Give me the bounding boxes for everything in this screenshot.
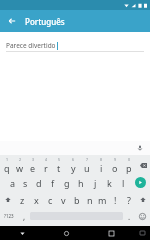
button[interactable]: Switch keyboard: [134, 226, 150, 240]
button[interactable]: Enter: [130, 174, 150, 191]
button[interactable]: h: [74, 174, 88, 191]
staticText: l: [122, 177, 125, 189]
staticText: 6: [72, 157, 75, 162]
button[interactable]: !: [109, 191, 122, 208]
button[interactable]: d: [32, 174, 46, 191]
button[interactable]: Backspace: [136, 157, 150, 174]
button[interactable]: g: [60, 174, 74, 191]
button[interactable]: f: [46, 174, 60, 191]
button[interactable]: Back: [0, 226, 44, 240]
button[interactable]: v: [57, 191, 70, 208]
button[interactable]: ?123: [0, 208, 18, 224]
button[interactable]: ,: [18, 208, 30, 224]
staticText: a: [10, 177, 16, 189]
button[interactable]: k: [102, 174, 116, 191]
button[interactable]: 2: [13, 157, 26, 174]
button[interactable]: Shift: [0, 191, 15, 208]
staticText: 5: [58, 157, 61, 162]
staticText: h: [78, 177, 84, 189]
button[interactable]: l: [116, 174, 130, 191]
staticText: n: [87, 194, 93, 206]
button[interactable]: 5: [52, 157, 66, 174]
button[interactable]: m: [96, 191, 109, 208]
staticText: s: [23, 177, 28, 189]
button[interactable]: Recent apps: [89, 226, 134, 240]
staticText: Parece divertido: [6, 41, 56, 50]
button[interactable]: 3: [26, 157, 39, 174]
button[interactable]: c: [43, 191, 57, 208]
staticText: o: [112, 162, 118, 174]
staticText: b: [74, 194, 80, 206]
button[interactable]: s: [19, 174, 32, 191]
button[interactable]: Home: [44, 226, 89, 240]
staticText: y: [71, 162, 76, 174]
staticText: m: [98, 194, 107, 206]
staticText: u: [84, 162, 90, 174]
button[interactable]: 8: [94, 157, 108, 174]
staticText: j: [94, 177, 97, 189]
staticText: 2: [19, 157, 22, 162]
button[interactable]: Voice input: [135, 143, 145, 153]
staticText: w: [16, 162, 24, 174]
button[interactable]: 1: [0, 157, 13, 174]
staticText: i: [100, 162, 103, 174]
staticText: !: [114, 194, 117, 206]
staticText: ?: [127, 194, 131, 206]
button[interactable]: b: [70, 191, 83, 208]
button[interactable]: Shift: [135, 191, 150, 208]
staticText: z: [20, 194, 25, 206]
staticText: e: [30, 162, 36, 174]
staticText: p: [126, 162, 132, 174]
staticText: t: [57, 162, 61, 174]
button[interactable]: 0: [122, 157, 136, 174]
button[interactable]: 6: [66, 157, 80, 174]
staticText: 1: [6, 157, 9, 162]
button[interactable]: 9: [108, 157, 122, 174]
staticText: 8: [100, 157, 103, 162]
button[interactable]: z: [15, 191, 29, 208]
staticText: ?123: [4, 213, 14, 219]
staticText: d: [36, 177, 42, 189]
button[interactable]: x: [29, 191, 43, 208]
staticText: .: [128, 211, 131, 222]
staticText: f: [51, 177, 55, 189]
staticText: ,: [23, 211, 26, 222]
button[interactable]: 4: [39, 157, 52, 174]
staticText: q: [4, 162, 10, 174]
staticText: v: [61, 194, 66, 206]
staticText: 0: [128, 157, 131, 162]
button[interactable]: a: [6, 174, 19, 191]
staticText: 3: [32, 157, 35, 162]
button[interactable]: j: [88, 174, 102, 191]
staticText: 4: [45, 157, 48, 162]
staticText: c: [48, 194, 53, 206]
button[interactable]: n: [83, 191, 96, 208]
staticText: g: [64, 177, 70, 189]
staticText: x: [34, 194, 39, 206]
button[interactable]: 7: [80, 157, 94, 174]
staticText: 9: [114, 157, 117, 162]
staticText: 7: [86, 157, 89, 162]
button[interactable]: Emoji: [135, 208, 150, 224]
button[interactable]: Back: [5, 14, 19, 28]
button[interactable]: .: [123, 208, 135, 224]
staticText: r: [44, 162, 48, 174]
button[interactable]: ?: [122, 191, 135, 208]
staticText: Português: [25, 16, 65, 27]
staticText: k: [107, 177, 112, 189]
